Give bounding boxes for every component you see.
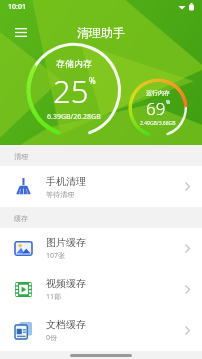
staticText: 69 [146,97,166,120]
staticText: 11部 [46,292,62,302]
staticText: 清理 [14,152,28,161]
staticText: 缓存 [14,214,28,223]
staticText: 25 [53,70,89,112]
button[interactable]: 图片缓存 [0,228,202,269]
staticText: 0份 [46,333,58,343]
staticText: 等待清理 [46,190,74,199]
button[interactable]: 手机清理 [0,166,202,207]
staticText: 视频缓存 [46,277,86,290]
button[interactable]: Menu [10,21,32,43]
staticText: 107张 [46,251,66,261]
staticText: % [89,75,96,86]
button[interactable]: 文档缓存 [0,310,202,351]
staticText: 运行内存 [146,89,170,97]
staticText: 存储内存 [56,58,92,69]
staticText: 2.49GB/3.68GB [140,120,176,127]
staticText: 6.39GB/26.28GB [47,112,101,122]
staticText: % [166,99,171,106]
staticText: 图片缓存 [46,236,86,249]
staticText: 10:01 [8,2,26,12]
staticText: 手机清理 [46,175,86,188]
staticText: 文档缓存 [46,318,86,331]
staticText: 清理助手 [77,25,125,40]
button[interactable]: 视频缓存 [0,269,202,310]
